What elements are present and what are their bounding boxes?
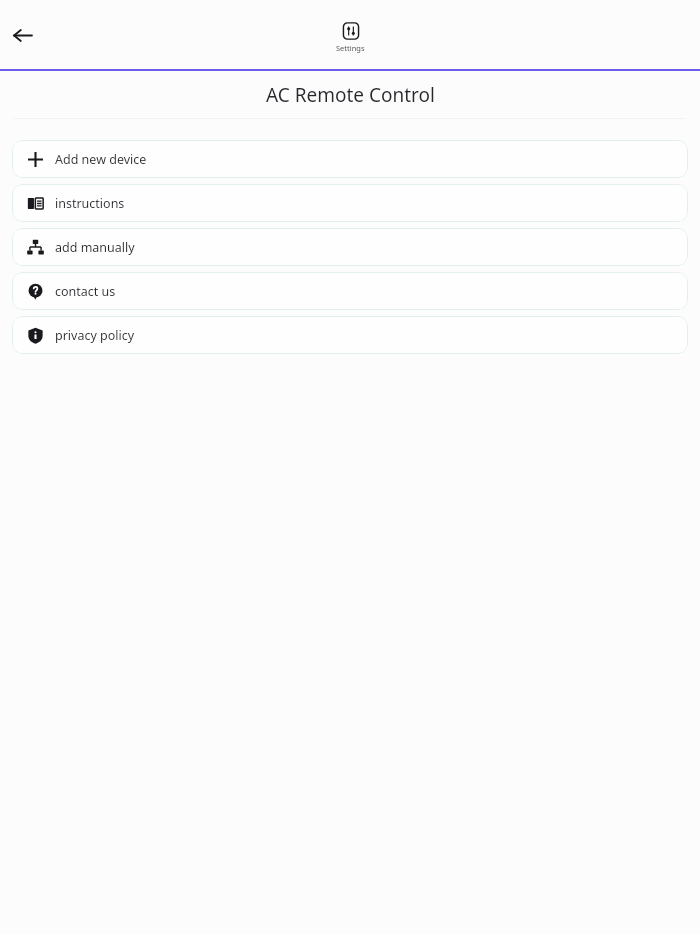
button[interactable]: Back <box>2 15 42 55</box>
staticText: contact us <box>55 283 116 300</box>
button[interactable]: privacy policy <box>12 316 688 354</box>
button[interactable]: add manually <box>12 228 688 266</box>
button[interactable]: instructions <box>12 184 688 222</box>
staticText: Add new device <box>55 151 147 168</box>
button[interactable]: Add new device <box>12 140 688 178</box>
staticText: instructions <box>55 195 125 212</box>
staticText: add manually <box>55 239 135 256</box>
button[interactable]: contact us <box>12 272 688 310</box>
staticText: AC Remote Control <box>266 82 435 108</box>
button[interactable]: Settings <box>336 22 365 53</box>
staticText: privacy policy <box>55 327 135 344</box>
staticText: Settings <box>336 43 365 53</box>
